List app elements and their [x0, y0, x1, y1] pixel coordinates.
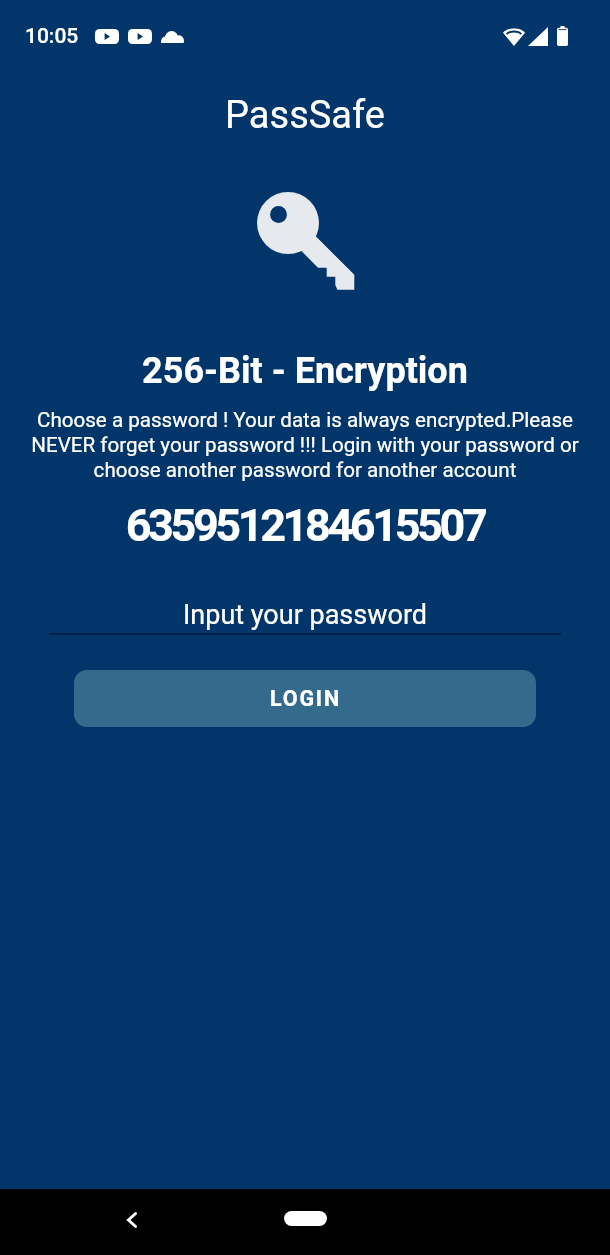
button[interactable]: Back — [110, 1198, 154, 1242]
button[interactable]: LOGIN — [74, 670, 536, 727]
staticText: 256-Bit - Encryption — [0, 350, 610, 392]
staticText: Input your password — [0, 599, 610, 631]
staticText: Choose a password ! Your data is always … — [0, 408, 610, 482]
staticText: 10:05 — [25, 24, 79, 49]
button[interactable]: Home — [284, 1211, 327, 1226]
staticText: LOGIN — [270, 686, 341, 711]
staticText: PassSafe — [0, 93, 610, 138]
staticText: 6359512184615507 — [0, 499, 610, 552]
